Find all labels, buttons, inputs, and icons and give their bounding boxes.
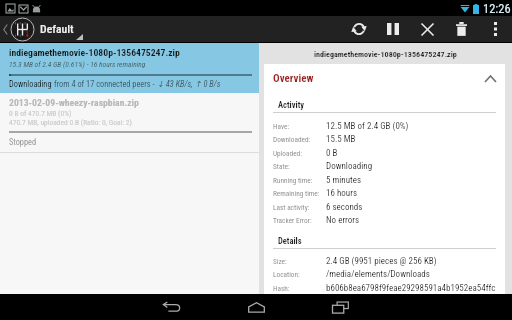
staticText: Details	[278, 236, 302, 246]
staticText: 6 seconds	[326, 202, 363, 213]
staticText: Last activity:	[273, 203, 310, 212]
staticText: Size:	[273, 257, 287, 266]
staticText: Location:	[273, 270, 300, 279]
button[interactable]: Delete	[444, 16, 478, 42]
staticText: b606b8ea6798f9feae29298591a4b1952ea54ffc	[326, 283, 496, 294]
staticText: 2013-02-09-wheezy-raspbian.zip	[9, 97, 139, 108]
staticText: 0 B	[326, 148, 338, 159]
staticText: Stopped	[9, 137, 37, 147]
staticText: Have:	[273, 122, 290, 131]
staticText: State:	[273, 162, 290, 171]
button[interactable]: 2013-02-09-wheezy-raspbian.zip	[0, 93, 259, 152]
staticText: 470.7 MB, uploaded 0 B (Ratio: 0, Goal: …	[9, 118, 132, 127]
staticText: from 4 of 17 connected peers -	[54, 79, 157, 89]
staticText: Downloading	[9, 79, 54, 89]
button[interactable]: Home	[214, 294, 298, 320]
staticText: Hash:	[273, 284, 290, 293]
staticText: 16 hours	[326, 188, 358, 199]
staticText: 2.4 GB (9951 pieces @ 256 KB)	[326, 256, 437, 267]
button[interactable]: Recent apps	[298, 294, 382, 320]
staticText: 12:26	[483, 1, 511, 16]
staticText: 12.5 MB of 2.4 GB (0%)	[326, 121, 409, 132]
staticText: Default	[40, 22, 74, 36]
staticText: Running time:	[273, 176, 313, 185]
staticText: 0 B of 470.7 MB (0%)	[9, 109, 72, 118]
staticText: indiegamethemovie-1080p-1356475247.zip	[314, 49, 457, 58]
button[interactable]: Pause	[376, 16, 410, 42]
staticText: 15.3 MB of 2.4 GB (0.61%) - 16 hours rem…	[9, 60, 146, 69]
staticText: 15.5 MB	[326, 134, 356, 145]
staticText: Downloading	[326, 161, 373, 172]
staticText: Activity	[278, 100, 305, 110]
staticText: Uploaded:	[273, 149, 302, 158]
staticText: Tracker Error:	[273, 216, 312, 225]
staticText: indiegamethemovie-1080p-1356475247.zip	[9, 47, 180, 58]
staticText: Overview	[273, 72, 314, 85]
staticText: /media/elements/Downloads	[326, 269, 430, 280]
button[interactable]: Overview	[264, 69, 505, 87]
staticText: No errors	[326, 215, 360, 226]
staticText: 5 minutes	[326, 175, 362, 186]
button[interactable]: indiegamethemovie-1080p-1356475247.zip	[0, 43, 259, 93]
button[interactable]: Refresh	[342, 16, 376, 42]
button[interactable]: Back	[130, 294, 214, 320]
button[interactable]: Close	[410, 16, 444, 42]
staticText: ↓ 43 KB/s, ↑ 0 B/s	[157, 79, 221, 89]
button[interactable]: Default	[0, 16, 84, 42]
staticText: Remaining time:	[273, 189, 320, 198]
staticText: Downloaded:	[273, 135, 311, 144]
button[interactable]: More options	[478, 16, 512, 42]
